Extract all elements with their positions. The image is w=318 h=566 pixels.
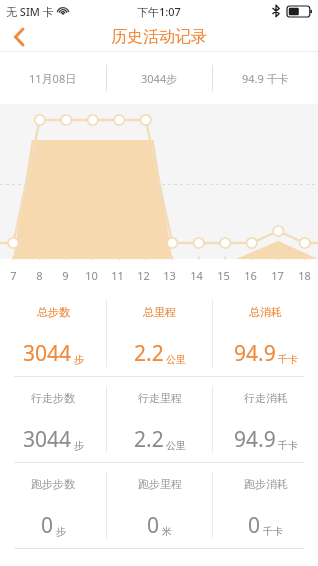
staticText: 跑步消耗 [244, 477, 288, 491]
button[interactable]: Back [0, 22, 38, 51]
staticText: 米 [162, 525, 172, 538]
button[interactable]: 行走步数 [0, 377, 318, 462]
staticText: 14 [190, 268, 203, 283]
staticText: 总消耗 [249, 305, 282, 319]
staticText: 16 [244, 268, 257, 283]
staticText: 13 [163, 268, 176, 283]
staticText: 步 [74, 353, 84, 366]
staticText: 8 [36, 268, 43, 283]
staticText: 总里程 [143, 305, 176, 319]
staticText: 公里 [166, 353, 186, 366]
staticText: 0 [248, 511, 261, 540]
staticText: 0 [147, 511, 160, 540]
staticText: 总步数 [37, 305, 70, 319]
staticText: 11月08日 [29, 71, 77, 86]
staticText: 3044 [23, 339, 72, 368]
staticText: 跑步里程 [138, 477, 182, 491]
staticText: 2.2 [134, 339, 164, 368]
staticText: 步 [74, 439, 84, 452]
staticText: 11 [111, 268, 124, 283]
button[interactable]: 跑步步数 [0, 463, 318, 548]
staticText: 9 [62, 268, 69, 283]
staticText: 3044步 [141, 71, 178, 86]
staticText: 3044 [23, 425, 72, 454]
staticText: 千卡 [278, 439, 298, 452]
staticText: 步 [56, 525, 66, 538]
staticText: 千卡 [278, 353, 298, 366]
staticText: 千卡 [263, 525, 283, 538]
staticText: 行走消耗 [244, 391, 288, 405]
staticText: 行走步数 [31, 391, 75, 405]
staticText: 7 [10, 268, 17, 283]
staticText: 下午1:07 [137, 4, 181, 19]
staticText: 15 [217, 268, 230, 283]
staticText: 跑步步数 [31, 477, 75, 491]
staticText: 12 [137, 268, 150, 283]
staticText: 行走里程 [138, 391, 182, 405]
staticText: 94.9 [234, 425, 276, 454]
staticText: 无 SIM 卡 [6, 4, 54, 19]
button[interactable]: 总步数 [0, 291, 318, 376]
staticText: 18 [298, 268, 311, 283]
staticText: 94.9 千卡 [242, 71, 289, 86]
staticText: 2.2 [134, 425, 164, 454]
staticText: 94.9 [234, 339, 276, 368]
staticText: 历史活动记录 [111, 27, 207, 47]
staticText: 公里 [166, 439, 186, 452]
staticText: 0 [41, 511, 54, 540]
staticText: 17 [271, 268, 284, 283]
staticText: 10 [85, 268, 98, 283]
